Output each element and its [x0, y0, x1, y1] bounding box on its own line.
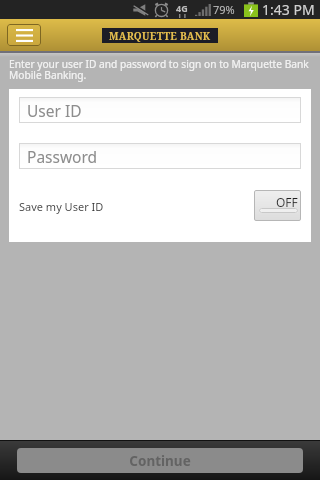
button[interactable]: Menu	[7, 24, 41, 46]
staticText: User ID	[27, 100, 82, 121]
staticText: OFF	[276, 194, 298, 210]
staticText: MARQUETTE BANK	[109, 29, 211, 43]
staticText: 79%	[213, 2, 235, 17]
staticText: 1:43 PM	[262, 0, 315, 19]
staticText: Continue	[129, 452, 191, 470]
staticText: Save my User ID	[19, 199, 104, 214]
button[interactable]: Save my User ID toggle, off	[254, 190, 301, 221]
staticText: Password	[27, 146, 98, 167]
button[interactable]: Continue	[17, 448, 303, 473]
staticText: Enter your user ID and password to sign …	[9, 57, 309, 82]
staticText: 4G	[176, 2, 188, 14]
